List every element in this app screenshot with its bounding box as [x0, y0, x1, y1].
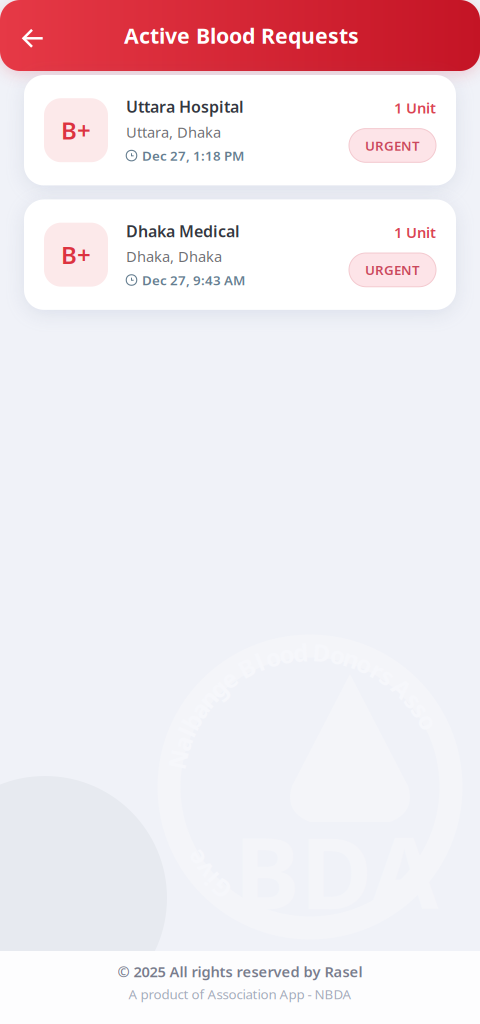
staticText: Dhaka Medical [126, 220, 240, 242]
button[interactable]: Back [0, 13, 58, 57]
staticText: B+ [61, 239, 91, 271]
button[interactable]: B+ [24, 199, 456, 310]
staticText: B+ [61, 114, 91, 146]
staticText: Dec 27, 1:18 PM [142, 147, 244, 164]
staticText: 1 Unit [394, 223, 436, 242]
staticText: Dhaka, Dhaka [126, 247, 222, 266]
staticText: Active Blood Requests [124, 21, 359, 50]
staticText: A product of Association App - NBDA [128, 985, 351, 1003]
staticText: Dec 27, 9:43 AM [142, 271, 245, 289]
staticText: Uttara, Dhaka [126, 122, 221, 142]
staticText: © 2025 All rights reserved by Rasel [117, 962, 362, 981]
button[interactable]: B+ [24, 75, 456, 185]
staticText: Uttara Hospital [126, 96, 244, 117]
staticText: 1 Unit [394, 98, 436, 118]
staticText: URGENT [365, 261, 420, 279]
staticText: URGENT [365, 137, 420, 154]
